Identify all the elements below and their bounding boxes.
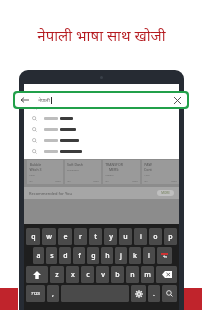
button[interactable]: Shift xyxy=(26,266,48,283)
staticText: t xyxy=(94,232,97,242)
button[interactable]: h xyxy=(101,247,113,264)
staticText: c xyxy=(86,270,90,280)
button[interactable]: , xyxy=(47,285,59,302)
staticText: w xyxy=(46,232,52,242)
button[interactable]: i xyxy=(134,228,147,245)
button[interactable] xyxy=(24,102,179,113)
button[interactable]: k xyxy=(129,247,141,264)
staticText: 4.1 xyxy=(67,179,71,182)
staticText: k xyxy=(133,251,137,261)
staticText: नेपाली xyxy=(38,97,50,104)
staticText: Playdemic xyxy=(67,168,79,171)
button[interactable]: v xyxy=(96,266,109,283)
staticText: f xyxy=(78,251,81,261)
staticText: King xyxy=(29,173,35,176)
button[interactable]: Search xyxy=(162,285,177,302)
staticText: o xyxy=(153,232,158,242)
staticText: , xyxy=(52,289,54,299)
button[interactable]: x xyxy=(66,266,79,283)
button[interactable]: PAW Cont xyxy=(142,160,179,184)
button[interactable]: Settings xyxy=(131,285,146,302)
staticText: d xyxy=(63,251,68,261)
button[interactable]: Recommended for You xyxy=(24,187,179,199)
staticText: n xyxy=(130,270,135,280)
button[interactable]: g xyxy=(87,247,99,264)
button[interactable]: Bubble Witch 3 xyxy=(27,160,63,184)
button[interactable]: f xyxy=(73,247,85,264)
button[interactable]: Clear xyxy=(172,95,182,105)
staticText: TRANSFOR MERS: xyxy=(105,162,123,172)
button[interactable]: a xyxy=(33,247,44,264)
button[interactable] xyxy=(24,135,179,146)
staticText: MORE xyxy=(161,191,170,195)
staticText: z xyxy=(55,270,59,280)
button[interactable]: Backspace xyxy=(156,266,177,283)
staticText: i xyxy=(140,232,142,242)
button[interactable]: w xyxy=(42,228,56,245)
button[interactable]: Switch language xyxy=(157,247,172,264)
staticText: ?123 xyxy=(31,291,40,296)
staticText: j xyxy=(120,251,122,261)
button[interactable]: c xyxy=(81,266,94,283)
staticText: FREE xyxy=(93,179,99,182)
staticText: नेपाली भाषा साथ खोजी xyxy=(37,25,166,45)
staticText: Nick xyxy=(144,173,150,176)
staticText: नेप xyxy=(163,255,167,259)
button[interactable]: y xyxy=(104,228,117,245)
button[interactable]: ?123 xyxy=(26,285,45,302)
button[interactable]: e xyxy=(58,228,72,245)
button[interactable]: r xyxy=(74,228,87,245)
staticText: l xyxy=(148,251,150,261)
staticText: b xyxy=(115,270,120,280)
button[interactable]: t xyxy=(89,228,102,245)
button[interactable]: TRANSFOR MERS: xyxy=(103,160,140,184)
button[interactable]: z xyxy=(50,266,64,283)
staticText: FREE xyxy=(55,179,61,182)
button[interactable]: n xyxy=(126,266,139,283)
button[interactable]: l xyxy=(143,247,155,264)
button[interactable] xyxy=(24,124,179,135)
button[interactable]: u xyxy=(119,228,132,245)
staticText: FREE xyxy=(132,179,138,182)
staticText: m xyxy=(144,270,151,280)
staticText: 4.1 xyxy=(144,179,148,182)
button[interactable]: b xyxy=(111,266,124,283)
button[interactable]: Back xyxy=(15,93,187,107)
staticText: y xyxy=(109,232,113,242)
staticText: Soft Dash xyxy=(67,162,83,167)
staticText: g xyxy=(91,251,96,261)
staticText: p xyxy=(168,232,173,242)
staticText: . xyxy=(153,289,155,299)
button[interactable]: q xyxy=(26,228,40,245)
staticText: a xyxy=(36,251,41,261)
staticText: h xyxy=(105,251,110,261)
button[interactable]: m xyxy=(141,266,154,283)
button[interactable]: Soft Dash xyxy=(65,160,101,184)
staticText: x xyxy=(71,270,75,280)
button[interactable]: d xyxy=(59,247,71,264)
staticText: Bubble Witch 3 xyxy=(29,162,42,172)
staticText: q xyxy=(31,232,36,242)
staticText: u xyxy=(123,232,128,242)
staticText: r xyxy=(79,232,82,242)
button[interactable] xyxy=(24,113,179,124)
button[interactable]: . xyxy=(148,285,160,302)
staticText: PAW Cont xyxy=(144,162,152,172)
button[interactable]: s xyxy=(46,247,57,264)
staticText: Recommended for You xyxy=(29,191,72,196)
staticText: 4.1 xyxy=(29,179,33,182)
staticText: s xyxy=(50,251,54,261)
staticText: v xyxy=(101,270,105,280)
staticText: e xyxy=(63,232,68,242)
button[interactable]: j xyxy=(115,247,127,264)
button[interactable]: o xyxy=(149,228,162,245)
button[interactable]: p xyxy=(164,228,177,245)
button[interactable] xyxy=(24,146,179,157)
staticText: Kabam xyxy=(105,173,114,176)
button[interactable]: Back xyxy=(20,95,30,105)
staticText: 4.1 xyxy=(105,179,109,182)
staticText: FREE xyxy=(171,179,177,182)
